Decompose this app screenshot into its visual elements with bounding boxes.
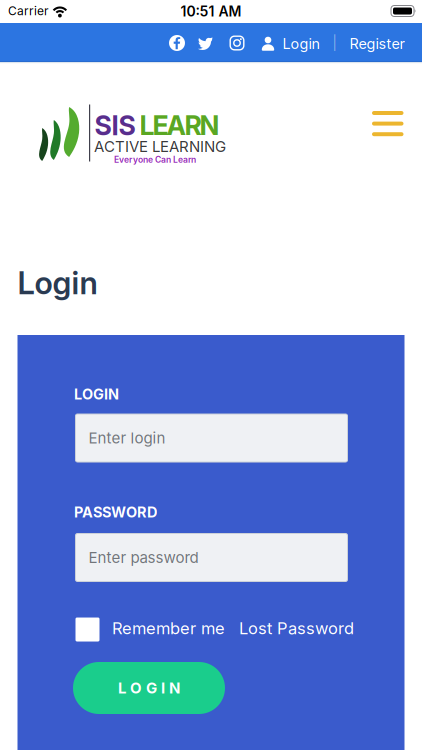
staticText: Everyone Can Learn — [114, 154, 196, 165]
staticText: Carrier — [8, 3, 49, 18]
button[interactable]: Lost Password — [239, 618, 354, 638]
button[interactable]: Menu — [366, 105, 409, 142]
button[interactable]: Instagram — [224, 30, 250, 56]
staticText: Login — [17, 264, 97, 302]
staticText: 10:51 AM — [180, 3, 241, 20]
staticText: Enter password — [88, 548, 198, 567]
button[interactable]: Enter login — [75, 414, 347, 462]
button[interactable]: Login — [257, 31, 324, 56]
staticText: LOGIN — [74, 385, 119, 403]
staticText: PASSWORD — [74, 503, 157, 521]
staticText: Register — [349, 35, 404, 52]
staticText: Login — [282, 35, 320, 52]
staticText: Enter login — [88, 429, 165, 447]
button[interactable]: Enter password — [75, 533, 347, 581]
staticText: LEARN — [139, 110, 219, 142]
button[interactable]: Login — [73, 662, 225, 714]
staticText: Remember me — [112, 618, 225, 638]
button[interactable]: Twitter — [191, 29, 219, 57]
staticText: ACTIVE LEARNING — [94, 137, 226, 155]
button[interactable]: Facebook — [163, 29, 191, 57]
button[interactable]: Register — [345, 31, 408, 56]
staticText: L O G I N — [118, 679, 180, 697]
staticText: Lost Password — [239, 618, 354, 638]
staticText: SIS — [94, 110, 135, 142]
staticText: | — [332, 34, 336, 51]
button[interactable]: Remember me — [75, 617, 99, 641]
